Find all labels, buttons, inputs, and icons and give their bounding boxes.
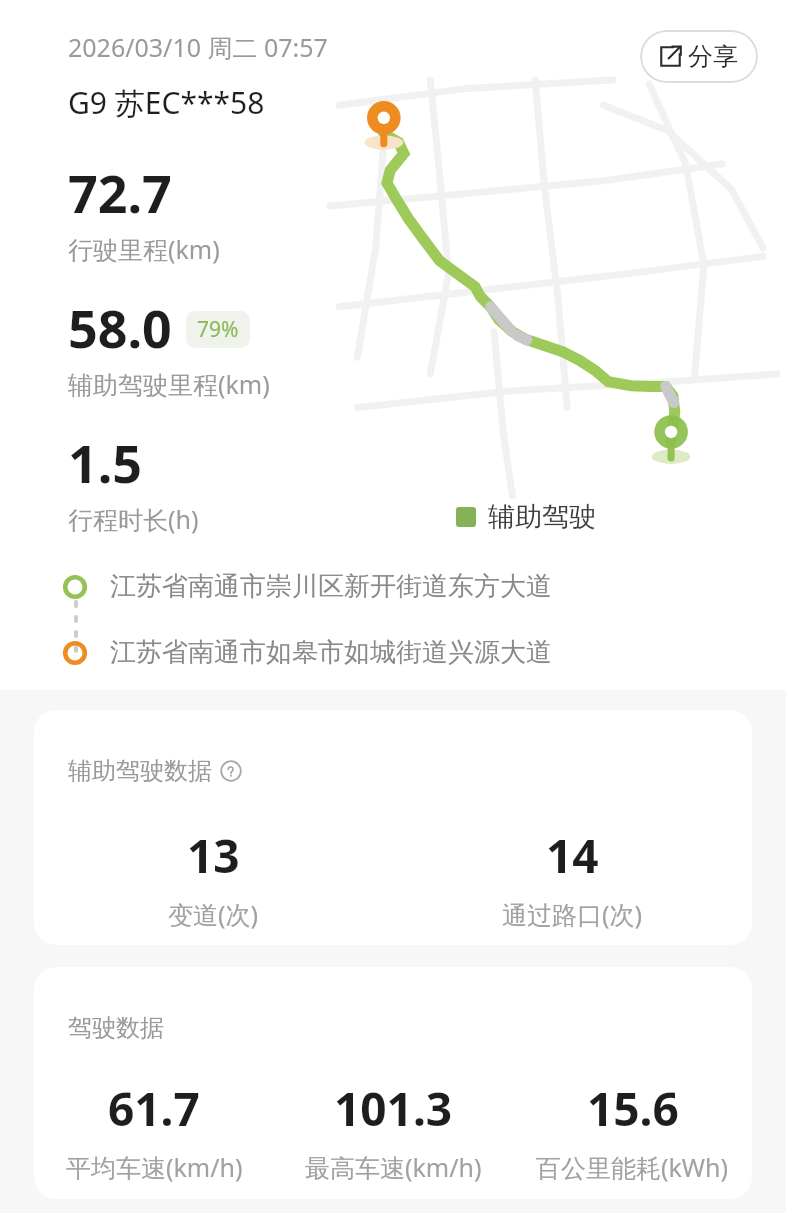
button[interactable]: 14 — [393, 824, 752, 931]
staticText: 最高车速(km/h) — [305, 1150, 482, 1184]
staticText: 百公里能耗(kWh) — [536, 1150, 729, 1184]
staticText: 72.7 — [68, 157, 172, 228]
staticText: 15.6 — [587, 1077, 679, 1140]
staticText: 13 — [187, 824, 240, 887]
staticText: 2026/03/10 周二 07:57 — [68, 30, 328, 64]
staticText: 分享 — [688, 41, 738, 72]
button[interactable]: 江苏省南通市如皋市如城街道兴源大道 — [0, 636, 786, 669]
staticText: 通过路口(次) — [502, 897, 643, 931]
staticText: 江苏省南通市如皋市如城街道兴源大道 — [110, 636, 552, 669]
button[interactable]: 15.6 — [513, 1077, 752, 1184]
staticText: 14 — [546, 824, 599, 887]
staticText: G9 苏EC***58 — [68, 82, 265, 123]
staticText: 行程时长(h) — [68, 502, 199, 536]
staticText: 江苏省南通市崇川区新开街道东方大道 — [110, 570, 552, 603]
staticText: 辅助驾驶数据 — [68, 756, 212, 786]
button[interactable]: 13 — [34, 824, 393, 931]
button[interactable]: 分享 — [640, 30, 758, 83]
staticText: 79% — [197, 315, 239, 344]
staticText: 辅助驾驶里程(km) — [68, 367, 270, 401]
button[interactable]: 61.7 — [34, 1077, 274, 1184]
staticText: 辅助驾驶 — [488, 500, 596, 534]
button[interactable]: Route map — [330, 80, 786, 500]
staticText: 变道(次) — [168, 897, 259, 931]
button[interactable]: 101.3 — [274, 1077, 513, 1184]
staticText: 行驶里程(km) — [68, 232, 220, 266]
staticText: 61.7 — [108, 1077, 200, 1140]
staticText: 1.5 — [68, 427, 143, 498]
staticText: 驾驶数据 — [68, 1013, 164, 1043]
staticText: 101.3 — [334, 1077, 453, 1140]
staticText: 平均车速(km/h) — [66, 1150, 243, 1184]
button[interactable]: 江苏省南通市崇川区新开街道东方大道 — [0, 570, 786, 603]
staticText: 58.0 — [68, 292, 172, 363]
